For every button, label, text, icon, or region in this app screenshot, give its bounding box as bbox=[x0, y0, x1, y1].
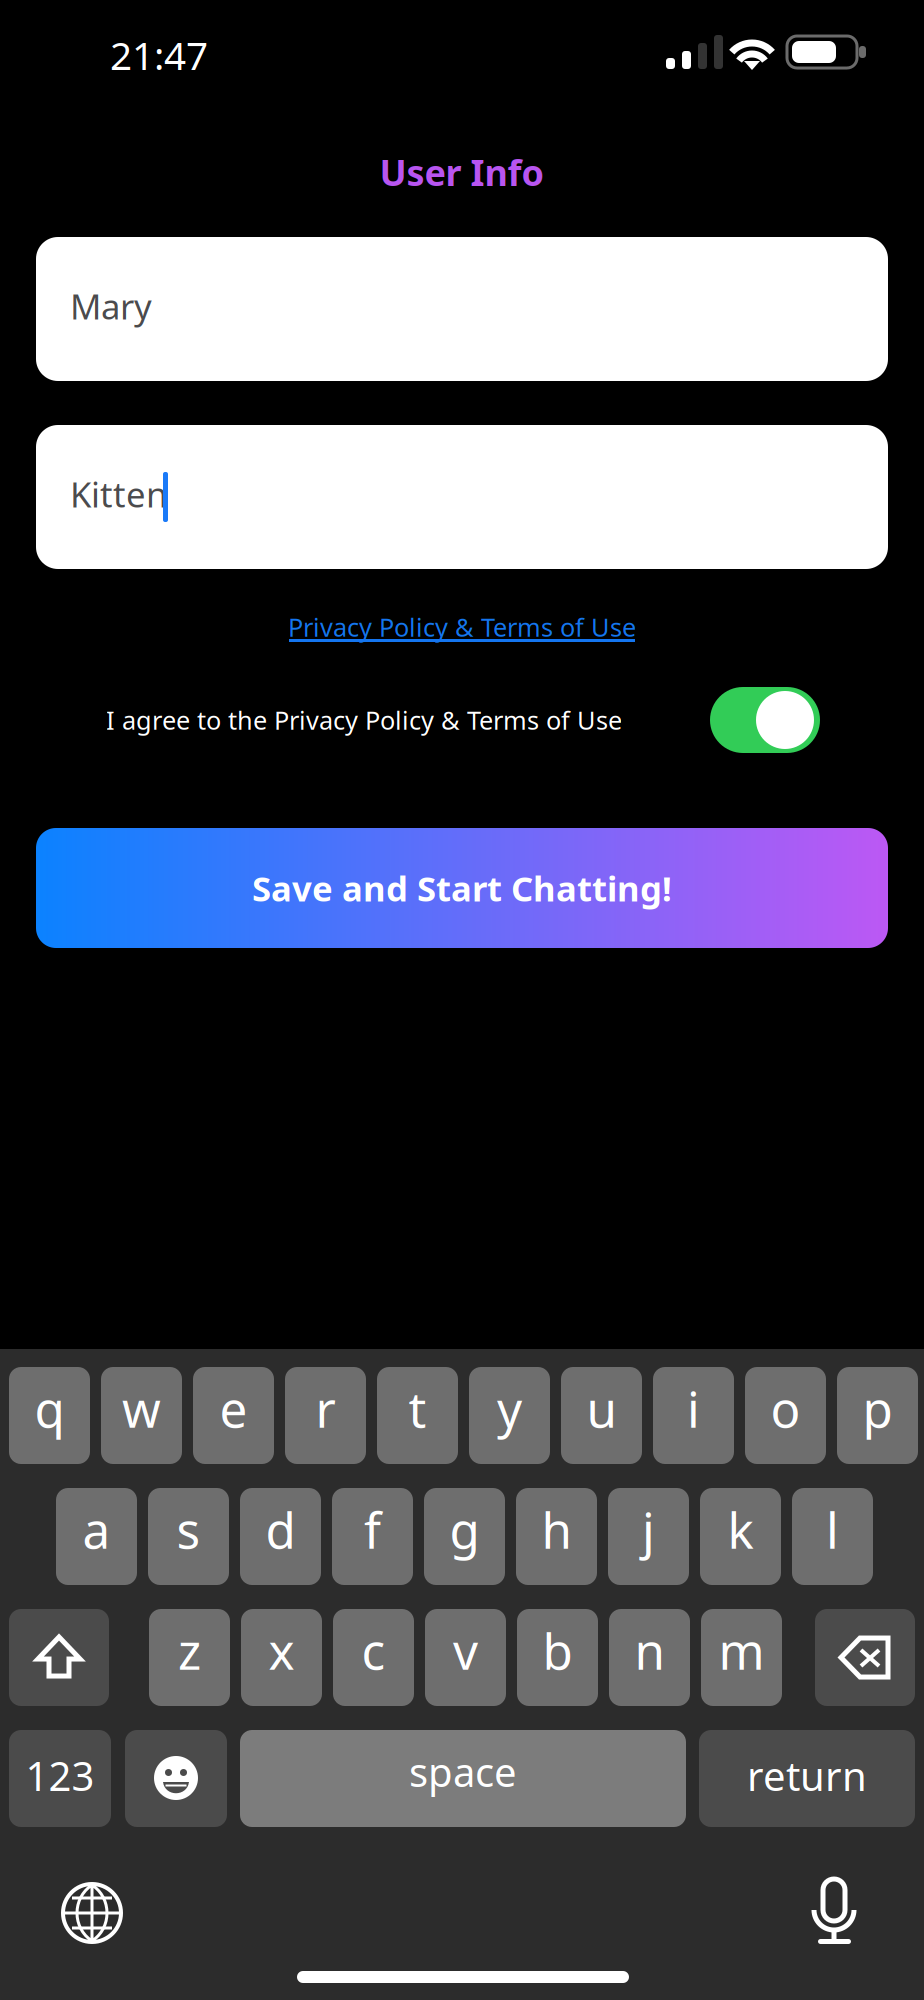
staticText: z bbox=[178, 1618, 201, 1683]
staticText: u bbox=[586, 1376, 616, 1441]
staticText: d bbox=[265, 1497, 295, 1562]
button[interactable]: s bbox=[148, 1488, 229, 1585]
button[interactable]: t bbox=[377, 1367, 458, 1464]
staticText: i bbox=[687, 1376, 700, 1441]
button[interactable]: Dictate bbox=[806, 1874, 862, 1948]
staticText: x bbox=[268, 1618, 294, 1683]
staticText: n bbox=[634, 1618, 664, 1683]
button[interactable]: v bbox=[425, 1609, 506, 1706]
button[interactable]: Privacy Policy & Terms of Use bbox=[282, 605, 642, 659]
button[interactable]: Kitten bbox=[36, 425, 888, 569]
button[interactable]: 123 bbox=[9, 1730, 111, 1827]
button[interactable]: f bbox=[332, 1488, 413, 1585]
button[interactable]: Mary bbox=[36, 237, 888, 381]
staticText: I agree to the Privacy Policy & Terms of… bbox=[106, 703, 622, 737]
button[interactable]: w bbox=[101, 1367, 182, 1464]
staticText: User Info bbox=[379, 148, 544, 196]
staticText: k bbox=[727, 1497, 753, 1562]
staticText: l bbox=[826, 1497, 839, 1562]
button[interactable]: I agree to the Privacy Policy and Terms … bbox=[710, 687, 820, 753]
staticText: s bbox=[176, 1497, 200, 1562]
staticText: Save and Start Chatting! bbox=[252, 865, 672, 911]
button[interactable]: space bbox=[240, 1730, 686, 1827]
staticText: w bbox=[122, 1376, 161, 1441]
staticText: t bbox=[408, 1376, 426, 1441]
staticText: j bbox=[642, 1497, 655, 1562]
button[interactable]: a bbox=[56, 1488, 137, 1585]
button[interactable]: x bbox=[241, 1609, 322, 1706]
staticText: c bbox=[361, 1618, 385, 1683]
button[interactable]: j bbox=[608, 1488, 689, 1585]
staticText: Kitten bbox=[70, 471, 167, 517]
staticText: f bbox=[364, 1497, 381, 1562]
button[interactable]: c bbox=[333, 1609, 414, 1706]
staticText: return bbox=[747, 1749, 867, 1802]
staticText: q bbox=[34, 1376, 64, 1441]
button[interactable]: k bbox=[700, 1488, 781, 1585]
button[interactable]: Shift bbox=[9, 1609, 109, 1706]
button[interactable]: Delete bbox=[815, 1609, 915, 1706]
button[interactable]: y bbox=[469, 1367, 550, 1464]
button[interactable]: Save and Start Chatting! bbox=[36, 828, 888, 948]
staticText: 123 bbox=[25, 1749, 94, 1802]
staticText: h bbox=[541, 1497, 571, 1562]
staticText: p bbox=[862, 1376, 892, 1441]
button[interactable]: return bbox=[699, 1730, 915, 1827]
staticText: b bbox=[542, 1618, 572, 1683]
button[interactable]: r bbox=[285, 1367, 366, 1464]
staticText: space bbox=[409, 1745, 517, 1798]
button[interactable]: Next keyboard bbox=[61, 1882, 123, 1944]
button[interactable]: p bbox=[837, 1367, 918, 1464]
staticText: e bbox=[219, 1376, 247, 1441]
staticText: Privacy Policy & Terms of Use bbox=[288, 610, 636, 644]
button[interactable]: o bbox=[745, 1367, 826, 1464]
staticText: r bbox=[315, 1376, 335, 1441]
button[interactable]: d bbox=[240, 1488, 321, 1585]
staticText: m bbox=[718, 1618, 764, 1683]
button[interactable]: b bbox=[517, 1609, 598, 1706]
button[interactable]: n bbox=[609, 1609, 690, 1706]
button[interactable]: i bbox=[653, 1367, 734, 1464]
button[interactable]: Emoji bbox=[125, 1730, 227, 1827]
button[interactable]: q bbox=[9, 1367, 90, 1464]
staticText: a bbox=[82, 1497, 110, 1562]
staticText: y bbox=[497, 1376, 522, 1441]
staticText: Mary bbox=[70, 283, 152, 329]
button[interactable]: m bbox=[701, 1609, 782, 1706]
staticText: o bbox=[770, 1376, 800, 1441]
button[interactable]: u bbox=[561, 1367, 642, 1464]
button[interactable]: h bbox=[516, 1488, 597, 1585]
button[interactable]: g bbox=[424, 1488, 505, 1585]
button[interactable]: z bbox=[149, 1609, 230, 1706]
button[interactable]: e bbox=[193, 1367, 274, 1464]
button[interactable]: l bbox=[792, 1488, 873, 1585]
staticText: v bbox=[453, 1618, 478, 1683]
staticText: g bbox=[449, 1497, 479, 1562]
staticText: 21:47 bbox=[110, 29, 208, 81]
